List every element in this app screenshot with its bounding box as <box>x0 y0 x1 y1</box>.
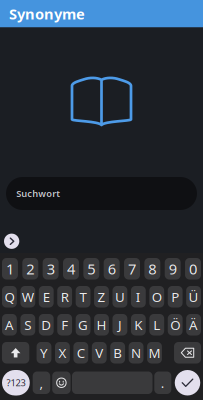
staticText: Y <box>40 344 48 362</box>
button[interactable]: I <box>131 286 146 307</box>
button[interactable]: U <box>112 286 127 307</box>
button[interactable]: Emoji <box>52 371 71 394</box>
button[interactable]: Löschen <box>174 342 201 363</box>
staticText: L <box>153 316 160 334</box>
staticText: Z <box>97 288 105 306</box>
staticText: O <box>152 288 162 306</box>
button[interactable]: D <box>39 314 54 335</box>
staticText: I <box>136 288 141 306</box>
staticText: T <box>80 288 87 306</box>
staticText: Synonyme <box>9 4 85 23</box>
staticText: X <box>58 344 66 362</box>
staticText: R <box>61 288 69 306</box>
button[interactable]: 7 <box>124 258 140 279</box>
button[interactable]: K <box>131 314 146 335</box>
staticText: 6 <box>108 259 116 278</box>
button[interactable]: Eingabe <box>174 370 201 395</box>
button[interactable]: 1 <box>2 258 18 279</box>
button[interactable]: B <box>110 342 125 363</box>
staticText: F <box>61 316 68 334</box>
staticText: D <box>41 316 51 334</box>
button[interactable]: 4 <box>63 258 79 279</box>
button[interactable]: T <box>76 286 90 307</box>
button[interactable]: 3 <box>43 258 59 279</box>
staticText: W <box>22 288 34 306</box>
button[interactable]: N <box>129 342 143 363</box>
staticText: G <box>78 316 88 334</box>
staticText: C <box>77 344 85 362</box>
button[interactable]: H <box>94 314 109 335</box>
button[interactable]: 5 <box>83 258 99 279</box>
button[interactable]: G <box>76 314 90 335</box>
staticText: Suchwort <box>16 187 60 200</box>
staticText: Ü <box>189 288 199 306</box>
button[interactable]: P <box>168 286 183 307</box>
staticText: Ä <box>189 316 198 334</box>
button[interactable]: E <box>39 286 54 307</box>
button[interactable]: F <box>57 314 72 335</box>
staticText: 7 <box>128 259 136 278</box>
button[interactable]: M <box>147 342 162 363</box>
button[interactable]: Weiter <box>4 234 19 249</box>
button[interactable]: ?123 <box>2 370 30 395</box>
staticText: . <box>161 374 165 392</box>
staticText: ?123 <box>6 377 25 389</box>
button[interactable]: Y <box>37 342 51 363</box>
staticText: 4 <box>67 259 75 278</box>
staticText: Q <box>4 288 14 306</box>
staticText: K <box>134 316 142 334</box>
button[interactable]: R <box>57 286 72 307</box>
staticText: B <box>113 344 122 362</box>
staticText: E <box>43 288 50 306</box>
button[interactable]: L <box>149 314 164 335</box>
staticText: 3 <box>47 259 55 278</box>
staticText: P <box>171 288 179 306</box>
staticText: S <box>24 316 31 334</box>
staticText: A <box>5 316 14 334</box>
button[interactable]: Ö <box>168 314 183 335</box>
staticText: H <box>96 316 106 334</box>
staticText: M <box>148 344 160 362</box>
staticText: 5 <box>87 259 95 278</box>
button[interactable]: 9 <box>165 258 181 279</box>
button[interactable]: O <box>149 286 164 307</box>
staticText: Ö <box>170 316 180 334</box>
button[interactable]: . <box>154 371 171 394</box>
staticText: , <box>39 374 43 392</box>
staticText: 2 <box>26 259 34 278</box>
button[interactable]: 6 <box>104 258 120 279</box>
button[interactable]: Umschalt <box>2 342 29 363</box>
button[interactable]: X <box>55 342 70 363</box>
staticText: J <box>118 316 122 334</box>
button[interactable]: J <box>112 314 127 335</box>
button[interactable]: Q <box>2 286 17 307</box>
staticText: 8 <box>148 259 156 278</box>
button[interactable]: , <box>33 371 50 394</box>
staticText: U <box>115 288 125 306</box>
staticText: 0 <box>189 259 197 278</box>
button[interactable]: A <box>2 314 17 335</box>
staticText: 1 <box>6 259 14 278</box>
button[interactable]: Ä <box>186 314 201 335</box>
button[interactable]: V <box>92 342 107 363</box>
staticText: 9 <box>169 259 177 278</box>
staticText: N <box>131 344 141 362</box>
staticText: V <box>95 344 103 362</box>
button[interactable]: 2 <box>22 258 38 279</box>
button[interactable]: 0 <box>185 258 201 279</box>
button[interactable]: 8 <box>144 258 160 279</box>
button[interactable]: S <box>20 314 35 335</box>
button[interactable]: W <box>20 286 35 307</box>
button[interactable]: C <box>73 342 88 363</box>
button[interactable]: Z <box>94 286 109 307</box>
button[interactable]: Ü <box>186 286 201 307</box>
